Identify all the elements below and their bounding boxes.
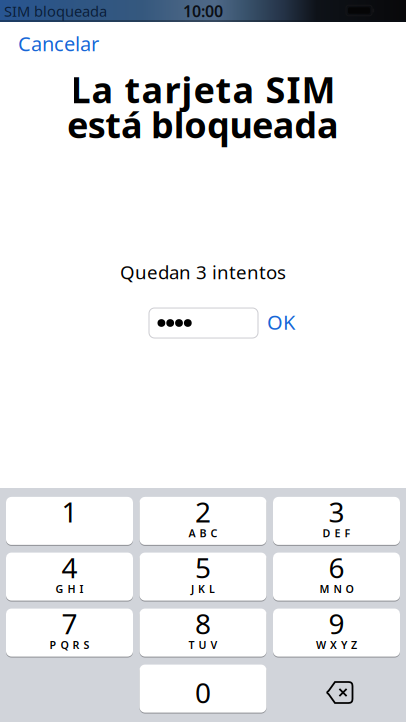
button[interactable]: OK [267, 309, 295, 335]
button[interactable]: 8 [139, 608, 266, 657]
staticText: G [55, 582, 63, 596]
staticText: O [345, 582, 353, 596]
staticText: 0 [195, 674, 211, 711]
button[interactable]: 9 [273, 608, 400, 657]
button[interactable]: 6 [273, 552, 400, 601]
staticText: está bloqueada [67, 100, 339, 148]
button[interactable]: Cancelar [18, 30, 99, 57]
staticText: H [67, 582, 75, 596]
staticText: 1 [61, 493, 77, 530]
staticText: OK [267, 309, 295, 335]
staticText: T [188, 638, 194, 652]
staticText: 4 [61, 549, 77, 586]
button[interactable]: 2 [139, 496, 266, 545]
staticText: Quedan 3 intentos [120, 260, 286, 284]
staticText: M [319, 582, 329, 596]
staticText: R [72, 638, 79, 652]
staticText: L [209, 582, 215, 596]
staticText: 9 [328, 605, 344, 642]
staticText: 6 [328, 549, 344, 586]
button[interactable]: PIN [149, 308, 258, 338]
button[interactable]: 5 [139, 552, 266, 601]
staticText: V [210, 638, 217, 652]
staticText: 3 [328, 493, 344, 530]
staticText: S [83, 638, 89, 652]
staticText: 8 [195, 605, 211, 642]
staticText: U [198, 638, 206, 652]
button[interactable]: 7 [6, 608, 133, 657]
staticText: N [333, 582, 341, 596]
staticText: Cancelar [18, 30, 99, 57]
staticText: Z [351, 638, 357, 652]
staticText: W [316, 638, 326, 652]
button[interactable]: 4 [6, 552, 133, 601]
staticText: I [79, 582, 83, 596]
staticText: P [49, 638, 56, 652]
staticText: C [210, 526, 217, 540]
staticText: 10:00 [183, 0, 223, 22]
staticText: K [198, 582, 205, 596]
staticText: E [334, 526, 340, 540]
button[interactable]: 3 [273, 496, 400, 545]
staticText: SIM bloqueada [4, 1, 107, 21]
staticText: 2 [195, 493, 211, 530]
staticText: Q [60, 638, 68, 652]
staticText: 5 [195, 549, 211, 586]
staticText: F [344, 526, 350, 540]
staticText: 7 [61, 605, 77, 642]
staticText: J [191, 582, 194, 596]
staticText: D [322, 526, 330, 540]
staticText: X [330, 638, 337, 652]
staticText: Y [341, 638, 347, 652]
button[interactable]: 1 [6, 496, 133, 545]
button[interactable]: 0 [139, 664, 266, 713]
staticText: La tarjeta SIM [70, 65, 335, 113]
staticText: B [199, 526, 206, 540]
staticText: A [188, 526, 195, 540]
button[interactable]: Borrar [273, 664, 400, 713]
